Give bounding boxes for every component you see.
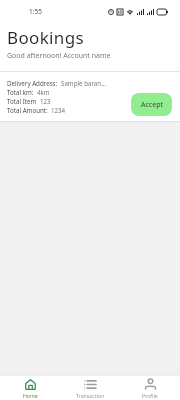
button[interactable]: Transaction	[60, 376, 120, 400]
staticText: 1234	[51, 106, 66, 114]
staticText: 123	[40, 97, 51, 105]
staticText: Sample baran...	[61, 79, 107, 87]
staticText: Home	[23, 392, 38, 399]
staticText: Accept	[141, 100, 163, 110]
staticText: Transaction	[76, 392, 105, 399]
button[interactable]: Profile	[120, 376, 180, 400]
staticText: Total Amount:	[7, 106, 48, 114]
staticText: Delivery Address:	[7, 79, 58, 87]
button[interactable]: Delivery Address:	[0, 72, 180, 121]
staticText: Bookings	[7, 26, 84, 49]
button[interactable]: Accept	[131, 93, 172, 116]
button[interactable]: Home	[0, 376, 60, 400]
staticText: Total km:	[7, 88, 34, 96]
staticText: Total Item	[7, 97, 37, 105]
staticText: 1:55	[29, 7, 42, 16]
staticText: 4km	[37, 88, 50, 96]
staticText: Profile	[142, 392, 158, 399]
staticText: Good afternoon! Account name	[7, 51, 111, 61]
